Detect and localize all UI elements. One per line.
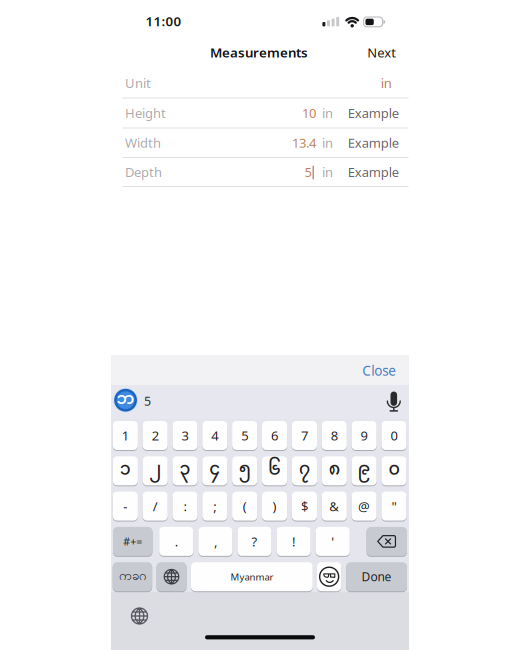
staticText: " (391, 497, 396, 515)
staticText: ) (273, 497, 277, 515)
staticText: ( (243, 497, 247, 515)
staticText: Next (367, 44, 396, 61)
staticText: $ (301, 497, 308, 515)
staticText: 7 (301, 427, 308, 444)
staticText: ၁ (120, 452, 131, 490)
button[interactable]: " (381, 491, 407, 521)
staticText: ၆ (268, 452, 281, 490)
button[interactable]: Close (326, 361, 396, 380)
button[interactable]: ၇ (292, 456, 317, 486)
button[interactable]: 9 (351, 420, 377, 450)
button[interactable]: Next keyboard (156, 562, 186, 592)
button[interactable]: 1 (113, 420, 138, 450)
staticText: in (381, 74, 392, 92)
staticText: Done (362, 568, 392, 585)
button[interactable]: $ (292, 491, 317, 521)
staticText: ၃ (179, 452, 190, 490)
button[interactable]: ( (232, 491, 257, 521)
button[interactable]: Height (111, 98, 409, 128)
staticText: Example (348, 134, 399, 152)
button[interactable]: ၂ (143, 456, 168, 486)
staticText: Width (125, 134, 161, 152)
staticText: 3 (181, 427, 188, 444)
button[interactable]: 3 (172, 420, 198, 450)
staticText: Close (362, 361, 396, 380)
staticText: ၇ (299, 452, 310, 490)
button[interactable]: : (172, 491, 198, 521)
staticText: 5 (144, 392, 151, 409)
button[interactable]: ' (316, 526, 350, 556)
button[interactable]: Delete (366, 526, 407, 556)
staticText: 1 (122, 427, 129, 444)
button[interactable]: , (198, 526, 232, 556)
staticText: ၅ (239, 452, 251, 490)
button[interactable]: ၅ (232, 456, 257, 486)
button[interactable]: 5 (232, 420, 257, 450)
staticText: 9 (361, 427, 368, 444)
button[interactable]: . (159, 526, 193, 556)
staticText: ၂ (149, 452, 161, 490)
staticText: #+= (123, 534, 142, 548)
button[interactable]: ၄ (202, 456, 227, 486)
staticText: & (329, 497, 339, 515)
button[interactable]: 0 (381, 420, 407, 450)
button[interactable]: ၁ (113, 456, 138, 486)
button[interactable]: ; (202, 491, 227, 521)
button[interactable]: Next (336, 44, 396, 61)
button[interactable]: #+= (113, 526, 152, 556)
button[interactable]: Width (111, 128, 409, 158)
staticText: in (322, 104, 333, 122)
staticText: @ (358, 497, 370, 515)
button[interactable]: - (113, 491, 138, 521)
button[interactable]: 2 (143, 420, 168, 450)
staticText: ! (292, 532, 295, 550)
button[interactable]: Candidate ဘ (113, 387, 139, 413)
button[interactable]: ၉ (351, 456, 377, 486)
button[interactable]: ! (276, 526, 311, 556)
staticText: ' (331, 532, 334, 550)
button[interactable]: / (143, 491, 168, 521)
staticText: 10 (302, 104, 316, 122)
button[interactable]: 6 (262, 420, 287, 450)
button[interactable]: ) (262, 491, 287, 521)
button[interactable]: Done (346, 562, 407, 592)
staticText: ၉ (358, 452, 371, 490)
staticText: 5 (241, 427, 248, 444)
button[interactable]: ၃ (172, 456, 198, 486)
button[interactable]: @ (351, 491, 377, 521)
staticText: Example (348, 163, 399, 181)
staticText: Height (125, 104, 166, 122)
staticText: 5 (304, 163, 311, 181)
button[interactable]: 8 (322, 420, 347, 450)
button[interactable]: ? (237, 526, 272, 556)
staticText: Unit (125, 74, 151, 92)
staticText: 8 (331, 427, 338, 444)
button[interactable]: ၀ (381, 456, 407, 486)
button[interactable]: Unit (111, 68, 409, 98)
button[interactable]: ၈ (322, 456, 347, 486)
staticText: - (123, 497, 127, 515)
button[interactable]: 4 (202, 420, 227, 450)
staticText: ၈ (329, 452, 340, 490)
staticText: : (183, 497, 186, 515)
button[interactable]: Depth (111, 157, 409, 187)
staticText: Depth (125, 163, 162, 181)
staticText: ၄ (209, 452, 220, 490)
button[interactable]: 7 (292, 420, 317, 450)
staticText: 4 (211, 427, 218, 444)
staticText: 2 (152, 427, 159, 444)
button[interactable]: Next keyboard (129, 606, 149, 626)
button[interactable]: Emoji (317, 562, 341, 592)
button[interactable]: & (322, 491, 347, 521)
staticText: / (153, 497, 158, 515)
button[interactable]: Myanmar (191, 562, 313, 592)
staticText: Example (348, 104, 399, 122)
staticText: ? (251, 532, 257, 550)
button[interactable]: ကခဂ (113, 562, 152, 592)
staticText: ; (213, 497, 216, 515)
button[interactable]: ၆ (262, 456, 287, 486)
button[interactable]: Dictation (386, 390, 402, 412)
staticText: in (322, 163, 333, 181)
staticText: ဘ (117, 383, 135, 418)
staticText: 0 (390, 427, 397, 444)
